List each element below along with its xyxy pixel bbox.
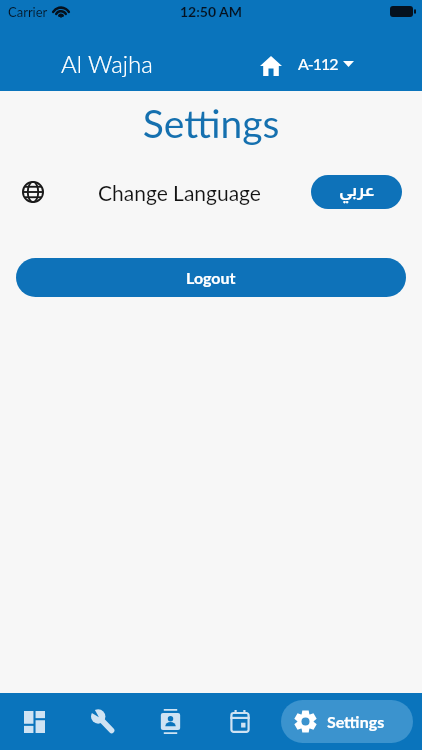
button[interactable]: Services <box>68 693 138 750</box>
button[interactable]: عربي <box>311 175 402 209</box>
button[interactable]: A-112 <box>294 48 358 79</box>
button[interactable]: Contacts <box>138 693 202 750</box>
button[interactable]: Home <box>256 51 285 81</box>
staticText: عربي <box>339 181 375 200</box>
staticText: Change Language <box>98 180 261 205</box>
button[interactable]: Dashboard <box>0 693 68 750</box>
staticText: 12:50 AM <box>180 3 242 20</box>
staticText: A-112 <box>298 54 338 73</box>
staticText: Al Wajha <box>61 49 153 78</box>
staticText: Settings <box>327 712 385 731</box>
button[interactable]: Settings <box>281 700 413 743</box>
button[interactable]: Calendar <box>202 693 278 750</box>
staticText: Settings <box>0 100 422 147</box>
button[interactable]: Logout <box>16 258 406 297</box>
staticText: Logout <box>186 268 236 287</box>
staticText: Carrier <box>8 4 48 20</box>
